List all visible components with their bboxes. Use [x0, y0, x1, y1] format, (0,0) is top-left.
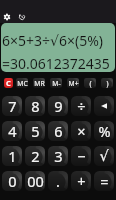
button[interactable]: M+: [67, 78, 79, 88]
staticText: M-: [52, 79, 61, 88]
button[interactable]: ): [101, 78, 113, 88]
staticText: 3: [54, 146, 63, 166]
button[interactable]: C: [4, 78, 13, 88]
button[interactable]: −: [71, 146, 91, 166]
staticText: %: [98, 121, 111, 141]
staticText: 6: [54, 121, 63, 141]
staticText: 4: [8, 121, 17, 141]
staticText: 1: [8, 146, 17, 166]
staticText: ×: [77, 121, 86, 141]
button[interactable]: +: [71, 171, 91, 191]
button[interactable]: √: [94, 146, 114, 166]
button[interactable]: .: [48, 171, 68, 191]
button[interactable]: 9: [48, 96, 68, 116]
button[interactable]: History: [19, 14, 25, 20]
staticText: 0: [8, 171, 17, 191]
button[interactable]: 3: [48, 146, 68, 166]
staticText: 8: [31, 96, 40, 116]
staticText: +: [77, 171, 86, 191]
button[interactable]: 4: [2, 121, 22, 141]
staticText: 9: [54, 96, 63, 116]
staticText: C: [6, 78, 11, 88]
staticText: =30.0612372435: [2, 54, 110, 72]
button[interactable]: 5: [25, 121, 45, 141]
staticText: .: [56, 171, 60, 191]
button[interactable]: =: [94, 171, 114, 191]
button[interactable]: %: [94, 121, 114, 141]
staticText: MC: [17, 79, 28, 88]
button[interactable]: Settings: [4, 14, 10, 20]
staticText: √: [99, 148, 109, 165]
staticText: −: [77, 146, 86, 166]
button[interactable]: Backspace: [94, 96, 114, 116]
button[interactable]: 1: [2, 146, 22, 166]
staticText: MR: [34, 79, 45, 88]
button[interactable]: 2: [25, 146, 45, 166]
button[interactable]: 6: [48, 121, 68, 141]
button[interactable]: 7: [2, 96, 22, 116]
staticText: ): [106, 79, 109, 88]
button[interactable]: 00: [25, 171, 45, 191]
staticText: M+: [68, 79, 79, 88]
button[interactable]: (: [84, 78, 96, 88]
staticText: 6×5+3÷√6×(5%): [2, 31, 104, 50]
staticText: =: [100, 171, 109, 191]
button[interactable]: MC: [16, 78, 28, 88]
button[interactable]: 8: [25, 96, 45, 116]
button[interactable]: 0: [2, 171, 22, 191]
staticText: 00: [27, 171, 44, 191]
button[interactable]: MR: [33, 78, 45, 88]
button[interactable]: 6×5+3÷√6×(5%): [1, 23, 115, 72]
staticText: ÷: [77, 96, 86, 116]
button[interactable]: ×: [71, 121, 91, 141]
staticText: 2: [31, 146, 40, 166]
button[interactable]: M-: [50, 78, 62, 88]
staticText: (: [89, 79, 92, 88]
staticText: 5: [31, 121, 40, 141]
button[interactable]: ÷: [71, 96, 91, 116]
staticText: 7: [8, 96, 17, 116]
